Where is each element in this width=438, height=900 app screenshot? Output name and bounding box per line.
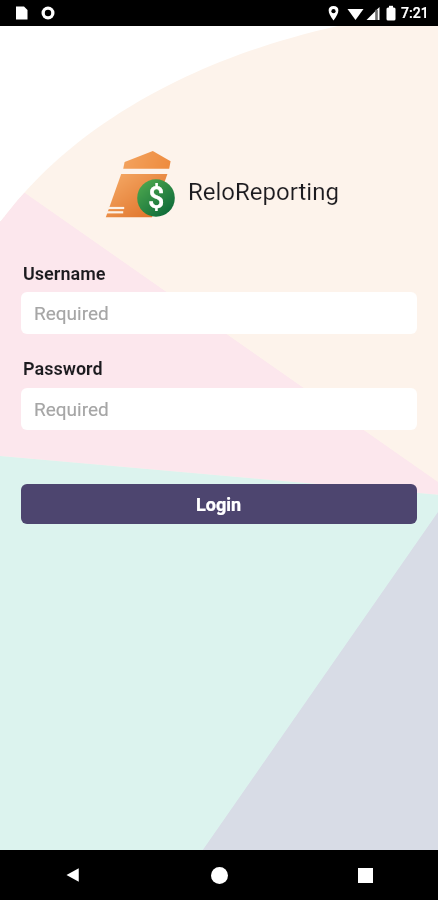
button[interactable]: Back — [0, 850, 146, 900]
button[interactable]: Login — [21, 484, 417, 524]
staticText: Required — [34, 302, 109, 324]
staticText: Login — [196, 494, 242, 515]
staticText: Password — [23, 358, 103, 379]
button[interactable]: Required — [21, 388, 417, 430]
button[interactable]: Home — [146, 850, 292, 900]
staticText: $ — [148, 181, 165, 215]
staticText: ReloReporting — [188, 178, 339, 206]
staticText: Username — [23, 263, 106, 284]
button[interactable]: Required — [21, 292, 417, 334]
staticText: Required — [34, 398, 109, 420]
button[interactable]: Recent apps — [292, 850, 438, 900]
staticText: 7:21 — [401, 5, 429, 21]
